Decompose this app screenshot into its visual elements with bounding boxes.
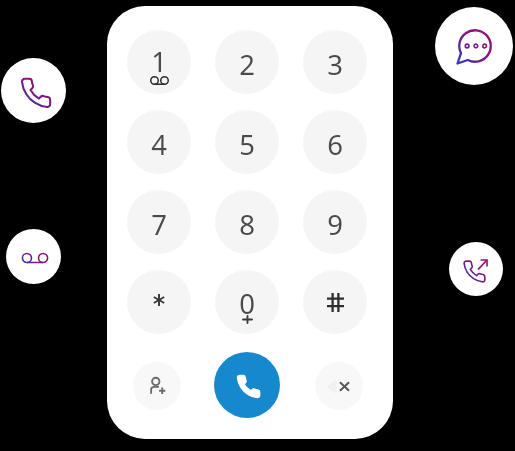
button[interactable]: Messages — [435, 7, 513, 85]
button[interactable]: 9 — [303, 190, 367, 254]
button[interactable] — [127, 270, 191, 334]
button[interactable]: 4 — [127, 110, 191, 174]
button[interactable]: 0 — [215, 270, 279, 334]
button[interactable]: Call — [1, 58, 66, 123]
button[interactable] — [303, 270, 367, 334]
button[interactable]: 7 — [127, 190, 191, 254]
staticText: 1 — [151, 43, 167, 80]
staticText: 3 — [327, 46, 343, 83]
staticText: 2 — [239, 46, 255, 83]
button[interactable]: 3 — [303, 30, 367, 94]
staticText: 4 — [151, 126, 167, 163]
button[interactable]: Call — [214, 352, 280, 418]
button[interactable]: Voicemail — [6, 229, 61, 284]
staticText: 5 — [239, 126, 255, 163]
button[interactable]: 8 — [215, 190, 279, 254]
staticText: 7 — [151, 206, 167, 243]
staticText: 9 — [327, 206, 343, 243]
staticText: 8 — [239, 206, 255, 243]
staticText: 0 — [239, 285, 255, 322]
staticText: 6 — [327, 126, 343, 163]
button[interactable]: 5 — [215, 110, 279, 174]
button[interactable]: Add contact — [133, 362, 181, 410]
button[interactable]: 6 — [303, 110, 367, 174]
button[interactable]: Outgoing call — [449, 242, 503, 296]
button[interactable]: Backspace — [315, 362, 363, 410]
button[interactable]: 1 — [127, 30, 191, 94]
button[interactable]: 2 — [215, 30, 279, 94]
